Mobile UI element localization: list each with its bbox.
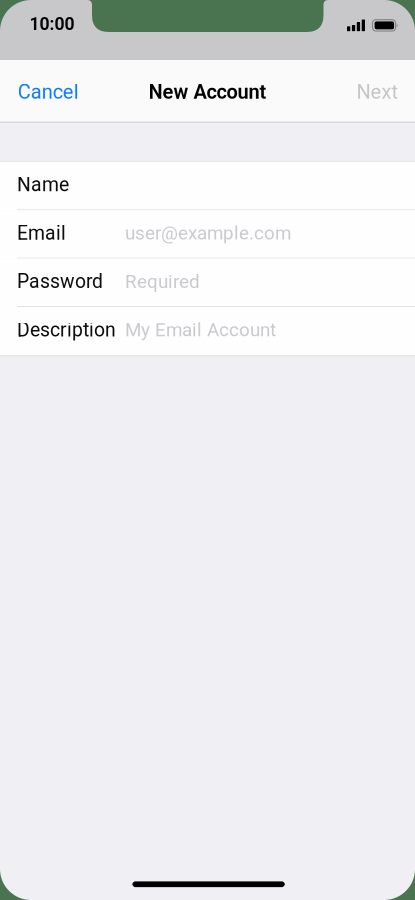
button[interactable]: Password [0, 259, 415, 307]
staticText: Name [17, 173, 69, 196]
staticText: Password [17, 270, 103, 293]
button[interactable]: Email [0, 210, 415, 259]
staticText: Cancel [18, 80, 79, 104]
staticText: Next [356, 80, 398, 104]
staticText: Email [17, 222, 66, 244]
button[interactable]: Description [0, 307, 415, 355]
staticText: Required [125, 270, 200, 292]
button[interactable]: Next [344, 70, 415, 114]
staticText: 10:00 [29, 14, 74, 34]
staticText: My Email Account [125, 319, 276, 341]
staticText: New Account [148, 80, 266, 104]
button[interactable]: Cancel [0, 70, 91, 114]
staticText: Description [17, 319, 116, 341]
button[interactable]: Name [0, 162, 415, 210]
staticText: user@example.com [125, 222, 291, 244]
